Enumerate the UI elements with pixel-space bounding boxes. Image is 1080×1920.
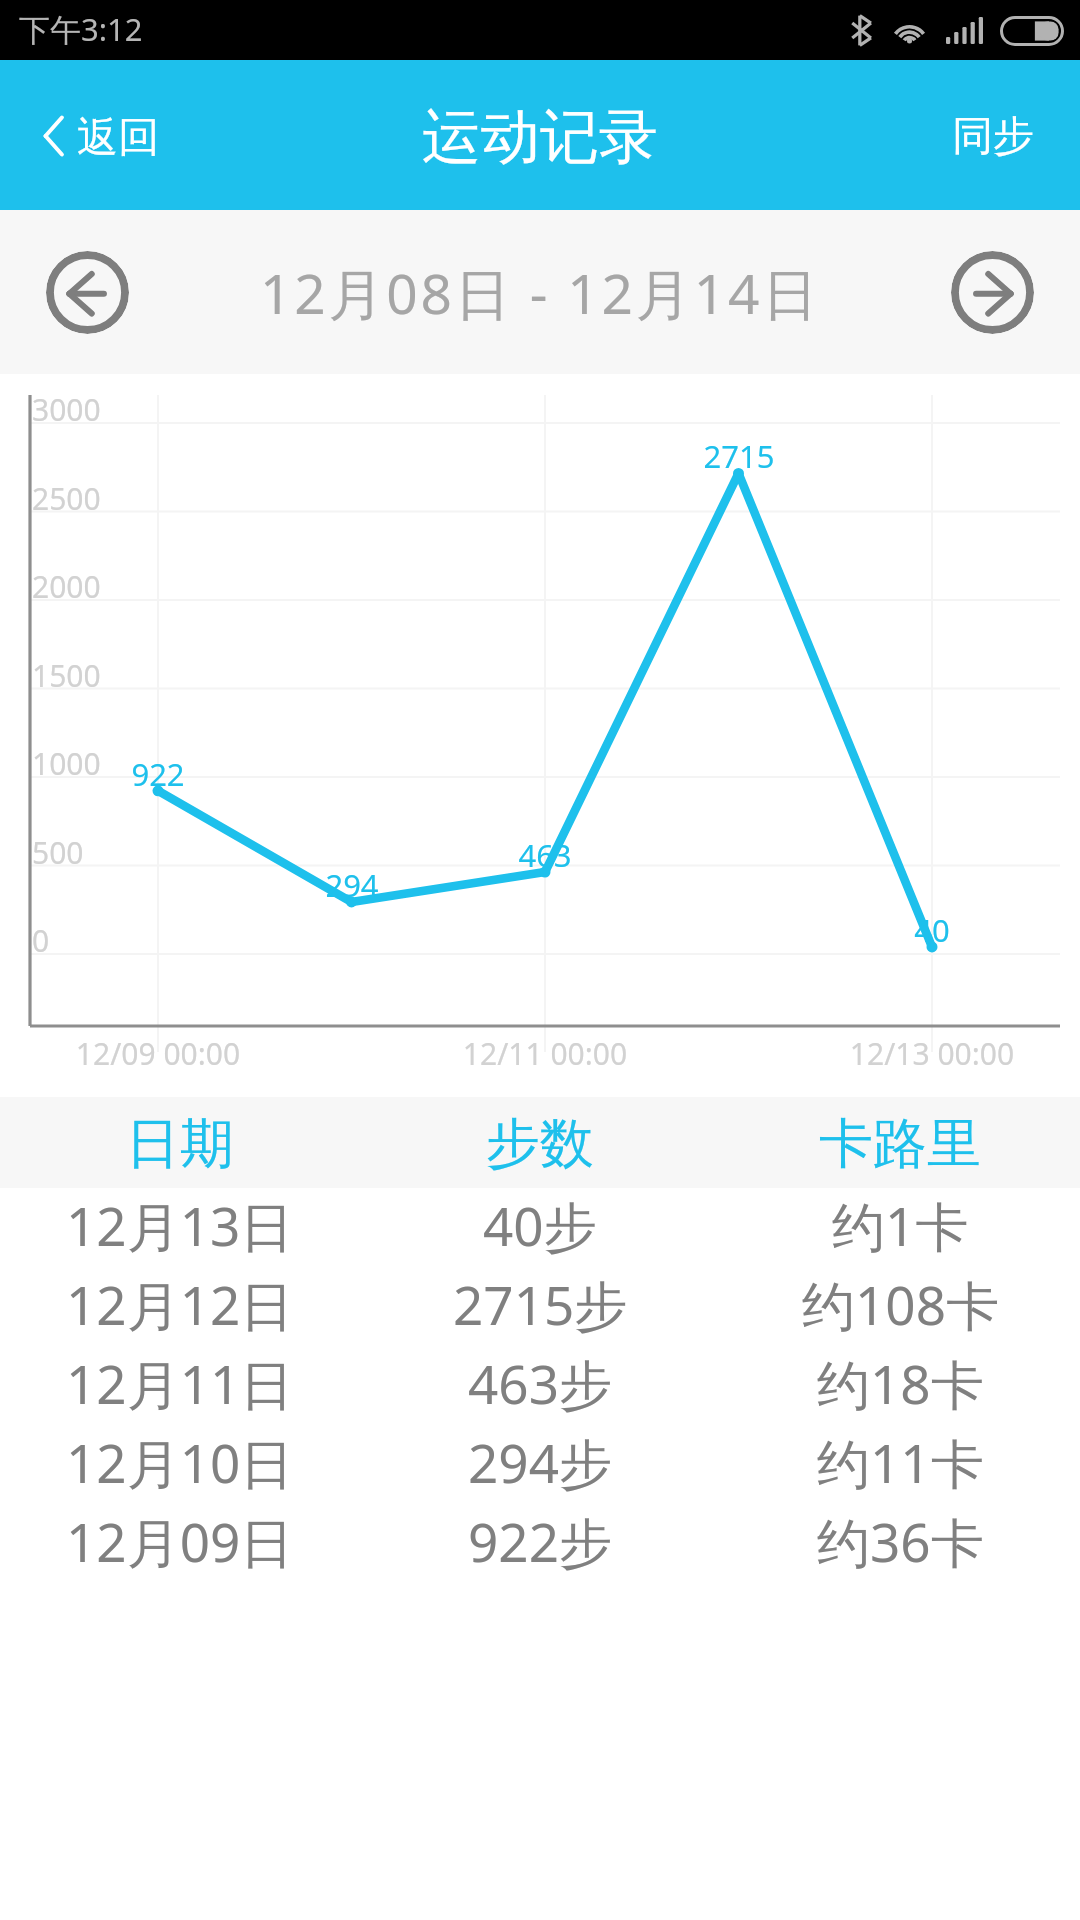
staticText: 922 [88, 753, 228, 795]
staticText: 约1卡 [832, 1189, 969, 1261]
button[interactable]: 12月13日 [0, 1188, 1080, 1267]
staticText: 12月11日 [66, 1347, 294, 1419]
staticText: 约18卡 [817, 1347, 984, 1419]
staticText: 约36卡 [817, 1505, 984, 1577]
staticText: 12月13日 [66, 1189, 294, 1261]
staticText: 2500 [32, 478, 101, 519]
staticText: 40步 [483, 1189, 597, 1261]
staticText: 运动记录 [422, 100, 658, 174]
staticText: 日期 [126, 1110, 234, 1178]
button[interactable]: 12月10日 [0, 1425, 1080, 1504]
staticText: 12/13 00:00 [782, 1033, 1080, 1074]
staticText: 1000 [32, 743, 101, 784]
staticText: 12/09 00:00 [8, 1033, 308, 1074]
staticText: 12月10日 [66, 1426, 294, 1498]
button[interactable]: 返回 [0, 83, 187, 187]
button[interactable]: Next week [951, 251, 1034, 334]
staticText: 0 [32, 920, 50, 961]
staticText: 步数 [486, 1110, 594, 1178]
staticText: 返回 [77, 112, 159, 164]
staticText: 12/11 00:00 [395, 1033, 695, 1074]
staticText: 2000 [32, 566, 101, 607]
staticText: 3000 [32, 389, 101, 430]
staticText: 922步 [468, 1505, 612, 1577]
button[interactable]: 12月12日 [0, 1267, 1080, 1346]
staticText: 500 [32, 832, 84, 873]
staticText: 463 [475, 834, 615, 876]
staticText: 40 [862, 909, 1002, 951]
staticText: 12月09日 [66, 1505, 294, 1577]
button[interactable]: 12月09日 [0, 1504, 1080, 1583]
staticText: 2715步 [453, 1268, 628, 1340]
staticText: 约11卡 [817, 1426, 984, 1498]
staticText: 2715 [669, 435, 809, 477]
button[interactable]: 12月11日 [0, 1346, 1080, 1425]
staticText: 卡路里 [819, 1110, 981, 1178]
staticText: 12月08日 - 12月14日 [260, 255, 820, 330]
staticText: 463步 [468, 1347, 612, 1419]
staticText: 下午3:12 [19, 8, 143, 50]
staticText: 294步 [468, 1426, 612, 1498]
staticText: 同步 [952, 111, 1034, 163]
staticText: 约108卡 [802, 1268, 999, 1340]
staticText: 294 [282, 864, 422, 906]
button[interactable]: Previous week [46, 251, 129, 334]
staticText: 1500 [32, 655, 101, 696]
staticText: 12月12日 [66, 1268, 294, 1340]
button[interactable]: 同步 [922, 83, 1080, 187]
